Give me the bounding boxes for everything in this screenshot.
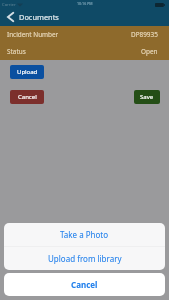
staticText: Save [140, 93, 154, 101]
staticText: Cancel [18, 93, 37, 101]
staticText: Cancel [71, 279, 98, 290]
staticText: Open [141, 47, 158, 56]
button[interactable]: Cancel [10, 90, 44, 104]
staticText: Upload from library [48, 253, 122, 264]
button[interactable]: Cancel [4, 273, 165, 296]
button[interactable]: Take a Photo [4, 223, 165, 246]
staticText: Take a Photo [60, 229, 109, 240]
button[interactable]: Save [134, 90, 160, 104]
staticText: Status [7, 47, 26, 56]
button[interactable]: Upload [10, 65, 44, 79]
staticText: DP89935 [131, 30, 158, 39]
staticText: Carrier [2, 2, 16, 8]
other: Back [7, 12, 14, 22]
button[interactable]: Back [0, 8, 169, 25]
staticText: Documents [19, 12, 59, 22]
staticText: Incident Number [7, 30, 59, 39]
staticText: Upload [17, 68, 38, 76]
button[interactable]: Upload from library [4, 247, 165, 270]
staticText: 10:16 PM [77, 1, 93, 6]
